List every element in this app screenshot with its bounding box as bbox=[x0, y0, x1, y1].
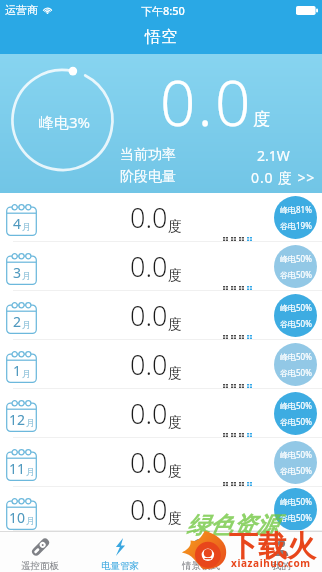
staticText: 峰电50% bbox=[280, 449, 312, 460]
staticText: 谷电50% bbox=[280, 512, 312, 523]
staticText: 峰电50% bbox=[280, 253, 312, 264]
staticText: 峰电3% bbox=[39, 112, 91, 132]
staticText: 0.0 bbox=[130, 248, 168, 285]
staticText: 当前功率 bbox=[120, 146, 176, 164]
staticText: 月 bbox=[22, 368, 31, 379]
staticText: 0.0 bbox=[130, 199, 168, 236]
staticText: 电量管家 bbox=[101, 560, 139, 572]
staticText: 峰电50% bbox=[280, 302, 312, 313]
staticText: 悟空 bbox=[145, 27, 177, 47]
staticText: 度 bbox=[168, 463, 182, 481]
staticText: 谷电50% bbox=[280, 318, 312, 329]
staticText: 0.0 bbox=[130, 395, 168, 432]
button[interactable]: 电量管家 bbox=[80, 532, 160, 572]
staticText: 谷电19% bbox=[280, 220, 312, 231]
staticText: 3 bbox=[13, 263, 22, 282]
staticText: 月 bbox=[26, 417, 35, 428]
staticText: 2 bbox=[13, 312, 22, 331]
staticText: 0.0 bbox=[130, 444, 168, 481]
staticText: 下载火 bbox=[229, 528, 316, 565]
staticText: 谷电50% bbox=[280, 367, 312, 378]
staticText: 峰电50% bbox=[280, 400, 312, 411]
staticText: 0.0 bbox=[130, 346, 168, 383]
staticText: 月 bbox=[22, 319, 31, 330]
staticText: 谷电50% bbox=[280, 416, 312, 427]
staticText: 11 bbox=[9, 459, 26, 478]
button[interactable]: 情景模式 bbox=[160, 532, 241, 572]
button[interactable]: 2 bbox=[0, 291, 322, 340]
staticText: 2.1W bbox=[257, 146, 290, 165]
staticText: 0.0 度 >> bbox=[251, 168, 316, 187]
staticText: 度 bbox=[168, 414, 182, 432]
staticText: 10 bbox=[9, 508, 26, 527]
staticText: 谷电50% bbox=[280, 269, 312, 280]
staticText: 峰电81% bbox=[280, 204, 312, 215]
button[interactable]: 10 bbox=[0, 487, 322, 531]
staticText: 谷电50% bbox=[280, 465, 312, 476]
staticText: 绿色资源 bbox=[186, 511, 278, 540]
staticText: 峰电50% bbox=[280, 351, 312, 362]
button[interactable]: 我的 bbox=[241, 532, 322, 572]
button[interactable]: 遥控面板 bbox=[0, 532, 80, 572]
staticText: 遥控面板 bbox=[21, 560, 59, 572]
staticText: 月 bbox=[26, 466, 35, 477]
staticText: 4 bbox=[13, 214, 22, 233]
staticText: 0.0 bbox=[130, 297, 168, 334]
staticText: 月 bbox=[22, 270, 31, 281]
staticText: 阶段电量 bbox=[120, 168, 176, 186]
staticText: 运营商 bbox=[5, 3, 38, 17]
button[interactable]: 11 bbox=[0, 438, 322, 487]
staticText: 情景模式 bbox=[182, 560, 220, 572]
staticText: 0.0 bbox=[130, 491, 168, 528]
staticText: 度 bbox=[168, 365, 182, 383]
staticText: 月 bbox=[26, 515, 35, 526]
staticText: 0.0 bbox=[160, 60, 253, 144]
staticText: 度 bbox=[168, 316, 182, 334]
button[interactable]: 3 bbox=[0, 242, 322, 291]
staticText: 度 bbox=[168, 267, 182, 285]
staticText: 度 bbox=[168, 510, 182, 528]
staticText: 12 bbox=[9, 410, 26, 429]
button[interactable]: 12 bbox=[0, 389, 322, 438]
staticText: 月 bbox=[22, 221, 31, 232]
staticText: 下午8:50 bbox=[141, 3, 185, 18]
staticText: 度 bbox=[168, 218, 182, 236]
button[interactable]: 4 bbox=[0, 193, 322, 242]
staticText: xiazaihuo.com bbox=[231, 556, 311, 570]
staticText: 度 bbox=[253, 109, 270, 130]
staticText: 峰电50% bbox=[280, 496, 312, 507]
button[interactable]: 1 bbox=[0, 340, 322, 389]
staticText: 1 bbox=[13, 361, 22, 380]
staticText: 我的 bbox=[272, 560, 291, 572]
